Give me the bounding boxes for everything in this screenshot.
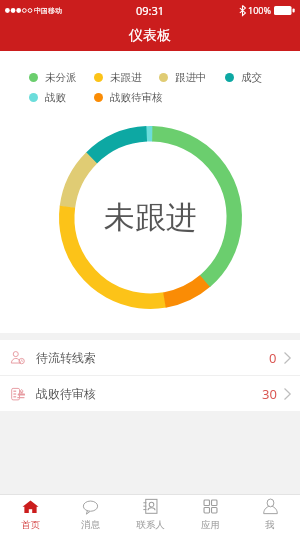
staticText: 100% — [248, 4, 271, 16]
button[interactable]: 联系人 — [120, 495, 180, 531]
staticText: 战败待审核 — [110, 91, 163, 104]
staticText: 中国移动 — [34, 6, 62, 15]
staticText: 09:31 — [136, 3, 165, 18]
staticText: 0 — [269, 349, 277, 367]
button[interactable]: 待流转线索 — [0, 340, 300, 375]
staticText: 30 — [262, 385, 277, 403]
staticText: 联系人 — [136, 519, 165, 531]
staticText: 未分派 — [45, 71, 77, 84]
staticText: 应用 — [201, 519, 220, 531]
staticText: 战败待审核 — [36, 386, 96, 401]
staticText: 消息 — [81, 519, 100, 531]
other: 待流转线索 — [11, 351, 25, 365]
staticText: 战败 — [45, 91, 66, 104]
staticText: 仪表板 — [129, 27, 171, 45]
staticText: 首页 — [21, 519, 40, 531]
staticText: 未跟进 — [110, 71, 142, 84]
staticText: 待流转线索 — [36, 350, 96, 365]
button[interactable]: 应用 — [180, 495, 240, 531]
button[interactable]: 首页 — [0, 495, 60, 531]
staticText: 跟进中 — [175, 71, 207, 84]
staticText: 我 — [265, 519, 275, 531]
button[interactable]: 消息 — [60, 495, 120, 531]
other: 战败待审核 — [11, 387, 25, 401]
staticText: 成交 — [241, 71, 262, 84]
staticText: 未跟进 — [104, 198, 197, 237]
button[interactable]: 我 — [240, 495, 300, 531]
button[interactable]: 战败待审核 — [0, 376, 300, 411]
